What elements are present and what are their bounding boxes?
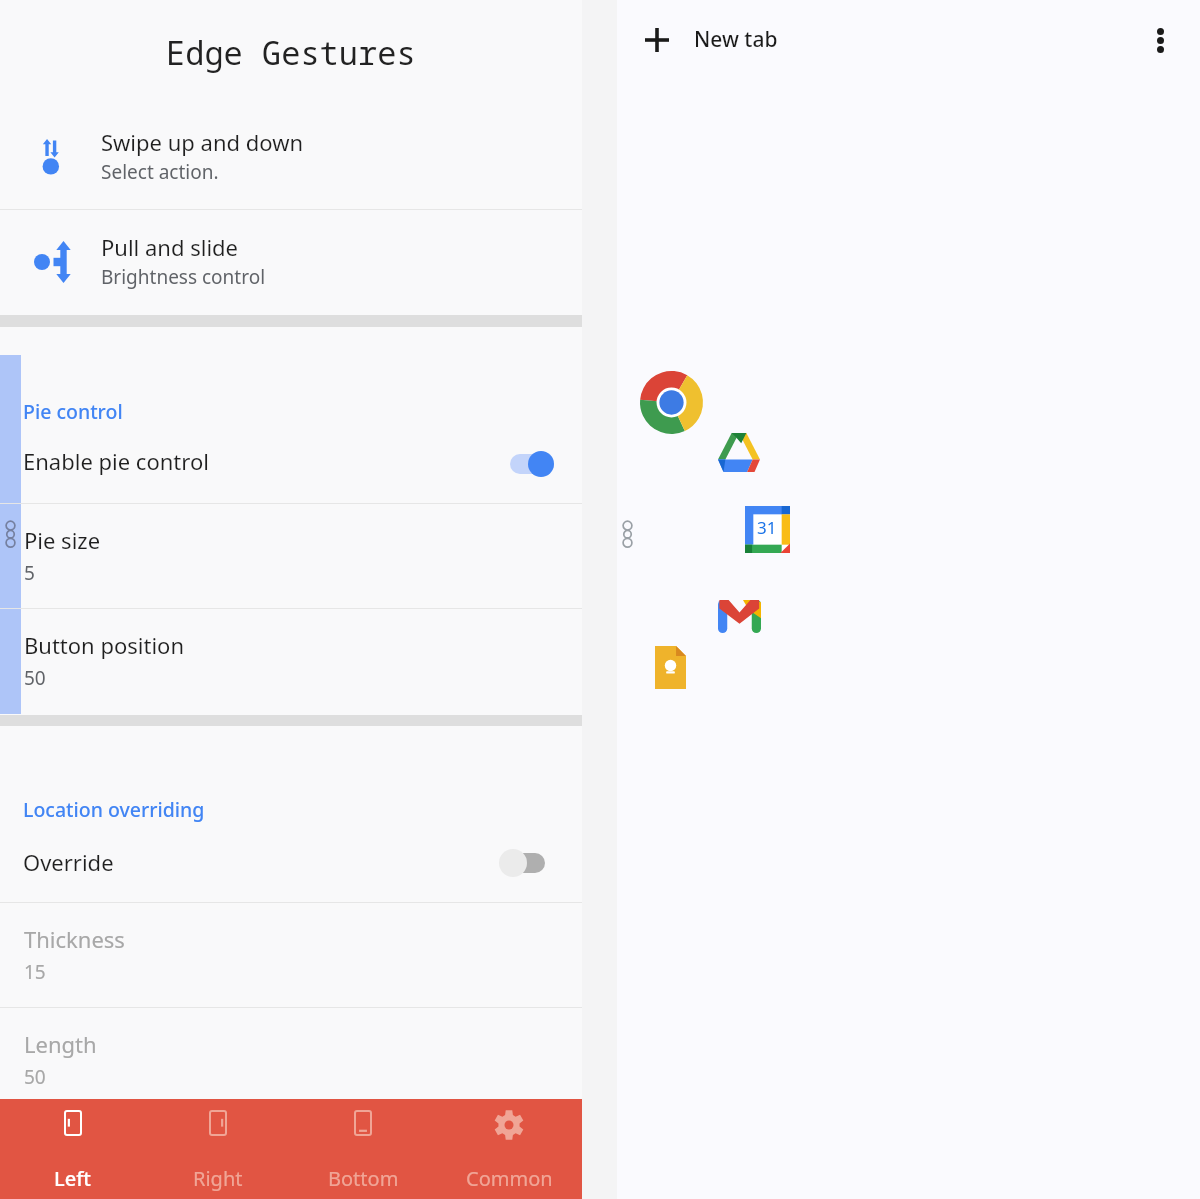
button[interactable]: Enable pie control (0, 437, 582, 503)
button[interactable]: Bottom (290, 1099, 436, 1199)
staticText: 50 (24, 1064, 46, 1090)
staticText: New tab (694, 25, 778, 54)
staticText: Pull and slide (101, 232, 238, 262)
button[interactable]: Pull and slide (0, 210, 582, 314)
staticText: Brightness control (101, 264, 266, 290)
button[interactable]: Drive (718, 433, 760, 472)
staticText: Button position (24, 630, 184, 660)
staticText: 50 (24, 665, 46, 691)
button[interactable]: Pie size (0, 504, 582, 608)
button[interactable]: New tab (633, 8, 778, 71)
staticText: Swipe up and down (101, 127, 304, 157)
staticText: 15 (24, 959, 46, 985)
staticText: 31 (757, 516, 777, 539)
staticText: Thickness (24, 924, 125, 954)
staticText: Pie control (23, 398, 123, 425)
button[interactable]: Left (0, 1099, 145, 1199)
staticText: Edge Gestures (166, 31, 416, 75)
staticText: Select action. (101, 159, 219, 185)
button[interactable]: Thickness (0, 903, 582, 1007)
button[interactable]: More options (1136, 16, 1184, 64)
button[interactable]: Button position (0, 609, 582, 713)
staticText: Enable pie control (23, 446, 209, 476)
staticText: Common (466, 1165, 553, 1192)
staticText: Bottom (328, 1165, 399, 1192)
button[interactable]: Chrome (640, 371, 703, 434)
staticText: Length (24, 1029, 97, 1059)
staticText: Right (193, 1165, 243, 1192)
button[interactable]: Override (0, 836, 582, 902)
button[interactable]: Gmail (718, 600, 761, 633)
button[interactable]: Length (0, 1008, 582, 1112)
button[interactable]: Keep (655, 646, 686, 689)
staticText: Location overriding (23, 796, 205, 823)
button[interactable]: Right (145, 1099, 290, 1199)
button[interactable]: Common (436, 1099, 582, 1199)
staticText: 5 (24, 560, 35, 586)
staticText: Left (54, 1165, 91, 1192)
staticText: Override (23, 847, 114, 877)
staticText: Pie size (24, 525, 101, 555)
button[interactable]: Calendar (745, 506, 790, 553)
button[interactable]: Swipe up and down (0, 105, 582, 209)
